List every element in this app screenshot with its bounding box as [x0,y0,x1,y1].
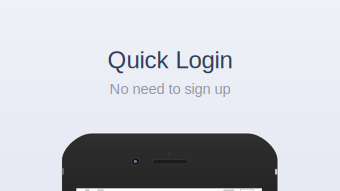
staticText: Quick Login [107,47,232,73]
staticText: No need to sign up [109,81,230,97]
